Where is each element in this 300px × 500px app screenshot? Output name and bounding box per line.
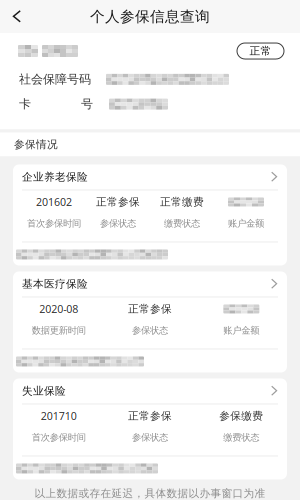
button[interactable]: 企业养老保险: [13, 164, 287, 265]
staticText: 号: [81, 97, 93, 111]
staticText: 社会保障号码: [19, 72, 91, 87]
staticText: 参保缴费: [219, 409, 263, 422]
staticText: 正常参保: [128, 409, 172, 422]
staticText: 参保状态: [132, 325, 168, 336]
button[interactable]: 失业保险: [13, 378, 287, 479]
staticText: 首次参保时间: [27, 218, 81, 229]
staticText: 正常缴费: [160, 195, 204, 208]
staticText: 参保情况: [14, 138, 58, 151]
staticText: 缴费状态: [223, 432, 259, 443]
staticText: 账户金额: [228, 218, 264, 229]
button[interactable]: Back: [0, 0, 34, 33]
staticText: 失业保险: [22, 384, 66, 397]
staticText: 2020-08: [39, 302, 78, 316]
button[interactable]: 正常: [237, 43, 284, 59]
staticText: 缴费状态: [164, 218, 200, 229]
staticText: 企业养老保险: [22, 170, 88, 183]
staticText: 正常参保: [96, 195, 140, 208]
staticText: 正常参保: [128, 302, 172, 315]
staticText: 201710: [41, 409, 77, 423]
staticText: 基本医疗保险: [22, 277, 88, 290]
staticText: 个人参保信息查询: [90, 7, 210, 25]
staticText: 卡: [19, 97, 31, 111]
staticText: 账户金额: [223, 325, 259, 336]
staticText: 参保状态: [100, 218, 136, 229]
staticText: 参保状态: [132, 432, 168, 443]
staticText: 201602: [36, 195, 72, 209]
staticText: 以上数据或存在延迟，具体数据以办事窗口为准: [34, 487, 265, 500]
staticText: 首次参保时间: [32, 432, 86, 443]
staticText: 正常: [249, 44, 271, 57]
staticText: 数据更新时间: [32, 325, 86, 336]
button[interactable]: 基本医疗保险: [13, 271, 287, 372]
